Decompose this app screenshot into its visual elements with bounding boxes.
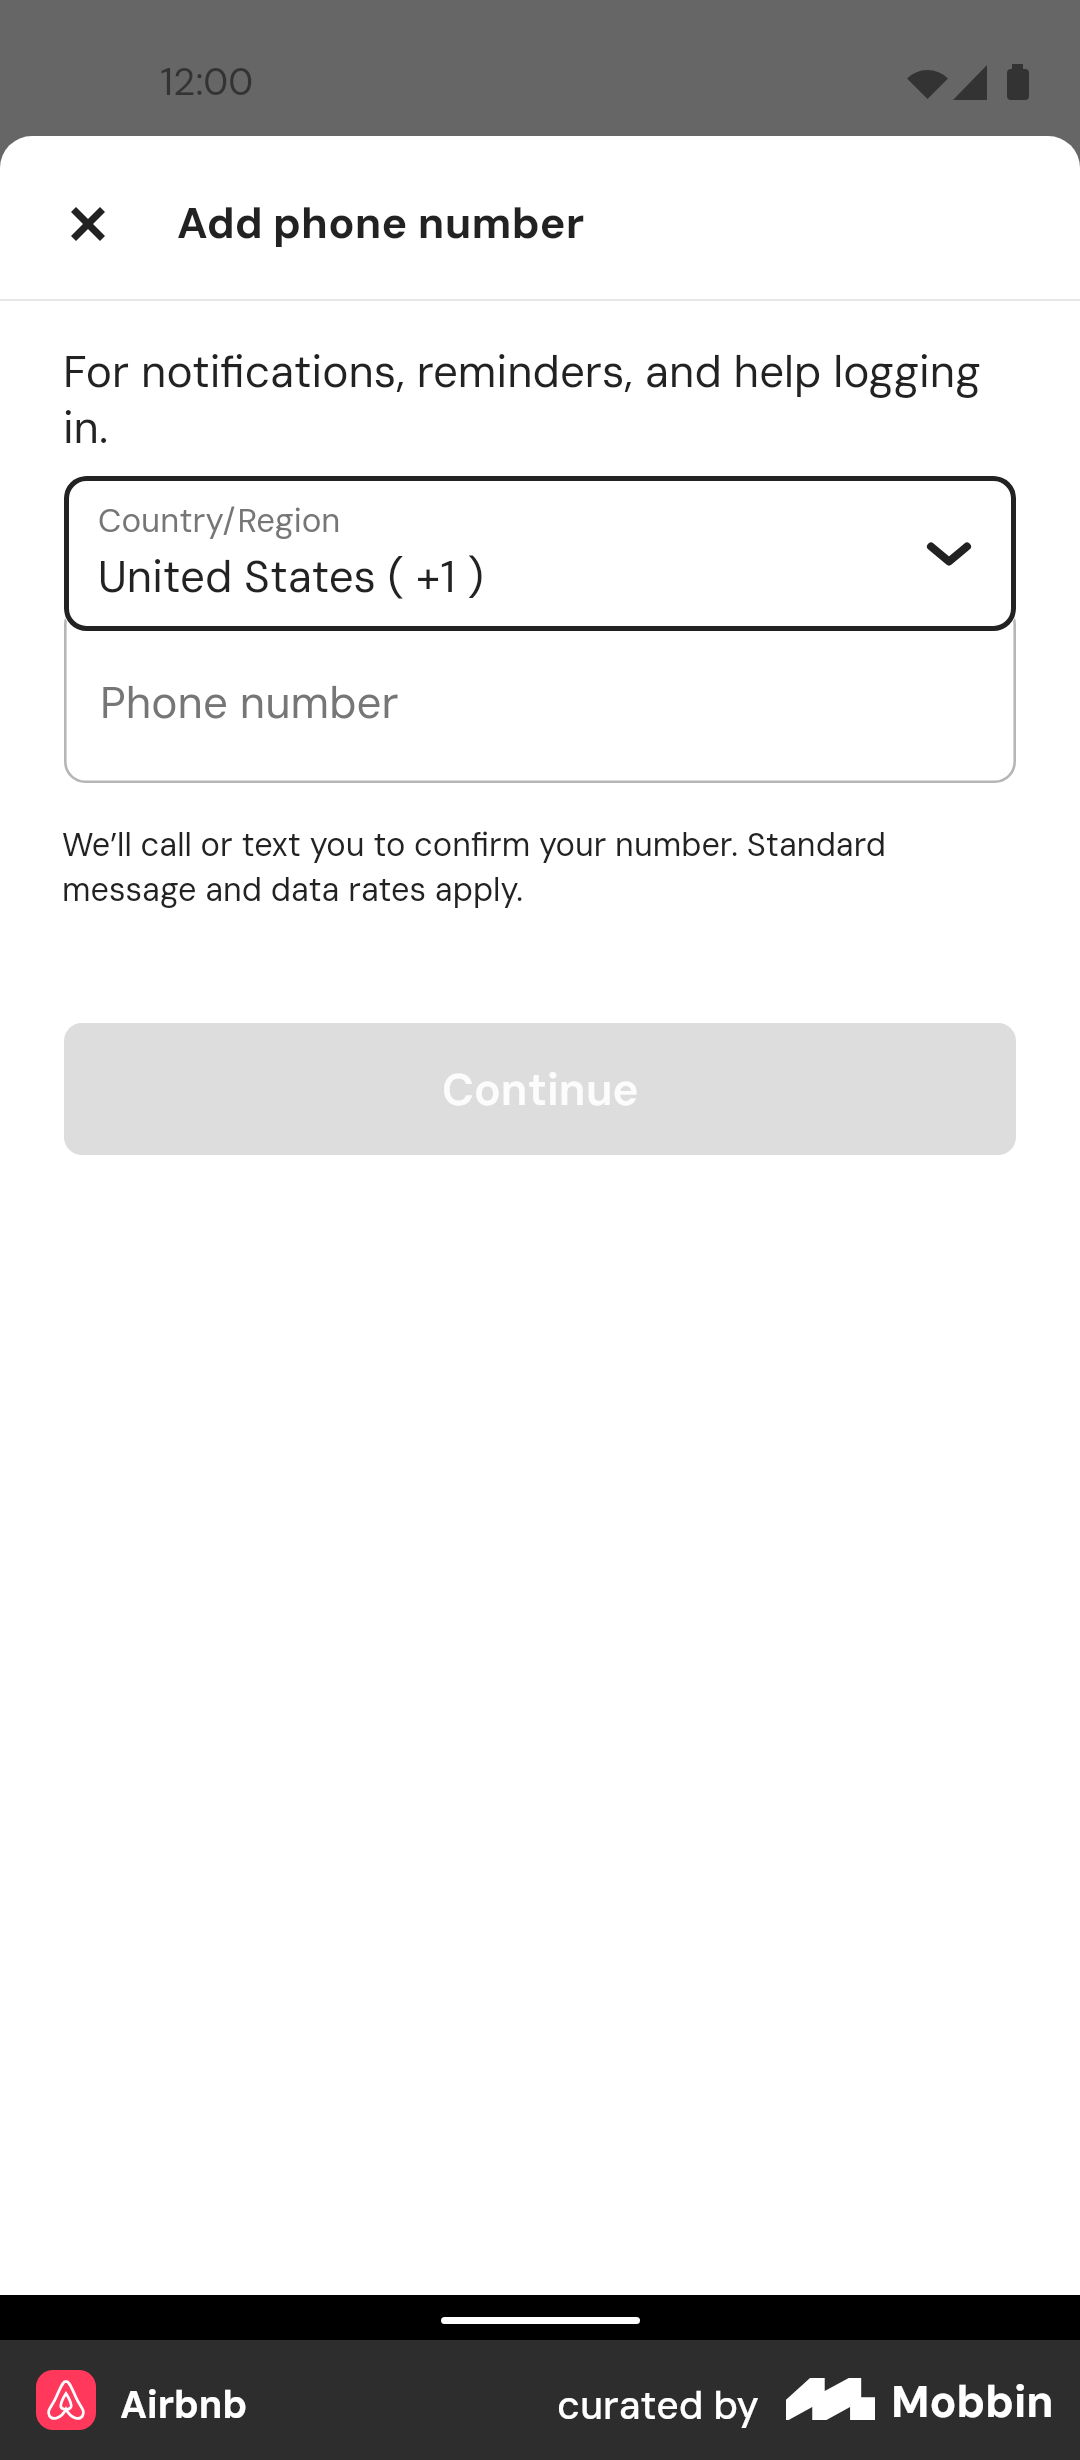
staticText: Phone number <box>100 674 399 731</box>
button[interactable]: Continue <box>64 1023 1016 1155</box>
staticText: Continue <box>442 1061 639 1118</box>
staticText: For notifications, reminders, and help l… <box>63 343 1015 456</box>
staticText: United States ( +1 ) <box>98 548 484 605</box>
staticText: curated by <box>557 2380 759 2431</box>
staticText: 12:00 <box>160 57 254 106</box>
button[interactable]: Phone number <box>64 603 1016 783</box>
staticText: Country/Region <box>98 499 341 542</box>
staticText: Mobbin <box>891 2373 1054 2430</box>
staticText: Add phone number <box>177 195 585 251</box>
button[interactable]: Country/Region <box>64 476 1016 631</box>
staticText: We’ll call or text you to confirm your n… <box>62 824 922 911</box>
staticText: Airbnb <box>120 2380 248 2429</box>
button[interactable]: Close <box>48 184 128 264</box>
